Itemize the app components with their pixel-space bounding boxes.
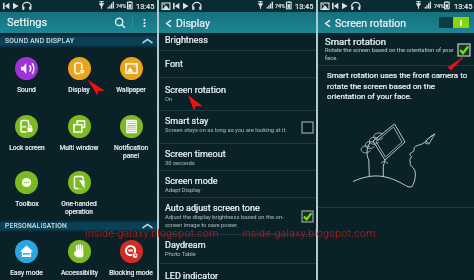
staticText: Smart rotation xyxy=(325,36,386,47)
staticText: LED indicator xyxy=(165,271,219,280)
staticText: Smart stay xyxy=(165,116,209,127)
button[interactable]: Multi window xyxy=(53,115,105,171)
other: Smart rotation checkbox xyxy=(458,44,470,56)
button[interactable]: LED indicator xyxy=(159,264,316,280)
button[interactable]: More options xyxy=(140,15,149,31)
staticText: Screen timeout xyxy=(165,149,226,160)
button[interactable]: Auto adjust screen tone xyxy=(159,198,316,235)
other: Smart stay xyxy=(302,122,313,133)
staticText: Multi window xyxy=(59,144,99,152)
other: Auto adjust screen tone xyxy=(302,211,313,222)
button[interactable]: SOUND AND DISPLAY xyxy=(0,34,157,48)
staticText: 74% xyxy=(434,3,445,9)
button[interactable]: Search xyxy=(113,16,127,30)
button[interactable]: Screen timeout xyxy=(159,144,316,171)
staticText: Settings xyxy=(7,16,48,29)
button[interactable]: Back xyxy=(164,17,210,29)
staticText: Auto adjust screen tone xyxy=(165,203,260,214)
button[interactable]: Wallpaper xyxy=(105,57,157,115)
staticText: Wallpaper xyxy=(116,86,146,94)
button[interactable]: Daydream xyxy=(159,235,316,264)
button[interactable]: Sound xyxy=(0,57,53,115)
staticText: 74% xyxy=(275,3,286,9)
staticText: Toolbox xyxy=(15,200,39,208)
staticText: Easy mode xyxy=(10,269,43,277)
staticText: SOUND AND DISPLAY xyxy=(5,37,75,45)
staticText: One-handed operation xyxy=(54,200,104,215)
staticText: Display xyxy=(68,86,90,94)
button[interactable]: Toolbox xyxy=(0,171,53,220)
button[interactable]: Screen mode xyxy=(159,171,316,198)
staticText: Screen mode xyxy=(165,176,218,187)
staticText: Photo Table xyxy=(165,251,196,258)
button[interactable]: Lock screen xyxy=(0,115,53,171)
staticText: Display xyxy=(176,17,210,29)
staticText: 74% xyxy=(116,3,127,9)
button[interactable]: Smart stay xyxy=(159,111,316,144)
button[interactable]: Font xyxy=(159,51,316,78)
button[interactable]: PERSONALISATION xyxy=(0,220,157,232)
staticText: Adapt Display xyxy=(165,187,201,194)
staticText: Blocking mode xyxy=(109,269,153,277)
button[interactable]: Back xyxy=(323,17,407,29)
other: Back xyxy=(323,19,332,28)
staticText: 30 seconds xyxy=(165,160,195,167)
staticText: inside-galaxy.blogspot.com xyxy=(85,227,219,240)
staticText: 13:45 xyxy=(454,2,473,11)
staticText: Daydream xyxy=(165,240,206,251)
button[interactable]: Screen rotation xyxy=(159,78,316,111)
staticText: On xyxy=(165,96,173,103)
button[interactable]: Smart rotation xyxy=(318,33,474,66)
button[interactable]: Accessibility xyxy=(53,240,105,280)
staticText: inside-galaxy.blogspot.com xyxy=(242,227,376,240)
staticText: Accessibility xyxy=(61,269,98,277)
staticText: Notification panel xyxy=(106,144,156,159)
staticText: Smart rotation uses the front camera to … xyxy=(327,71,471,101)
button[interactable]: One-handed operation xyxy=(53,171,105,220)
staticText: Sound xyxy=(17,86,36,94)
staticText: 13:45 xyxy=(136,2,155,11)
staticText: PERSONALISATION xyxy=(5,222,68,230)
button[interactable]: Easy mode xyxy=(0,240,53,280)
staticText: Screen stays on as long as you are looki… xyxy=(165,127,287,134)
button[interactable]: Display xyxy=(53,57,105,115)
staticText: Font xyxy=(165,59,183,70)
other: Back xyxy=(164,19,173,28)
button[interactable]: Notification panel xyxy=(105,115,157,171)
staticText: Adjust the display brightness based on t… xyxy=(165,214,296,228)
staticText: Brightness xyxy=(165,35,208,46)
staticText: Screen rotation xyxy=(335,17,407,29)
staticText: Screen rotation xyxy=(165,85,226,96)
staticText: Rotate the screen based on the orientati… xyxy=(325,47,456,61)
staticText: Lock screen xyxy=(9,144,45,152)
button[interactable]: Screen rotation toggle xyxy=(439,17,469,28)
button[interactable]: Blocking mode xyxy=(105,240,157,280)
staticText: 13:45 xyxy=(295,2,314,11)
button[interactable]: Brightness xyxy=(159,33,316,51)
